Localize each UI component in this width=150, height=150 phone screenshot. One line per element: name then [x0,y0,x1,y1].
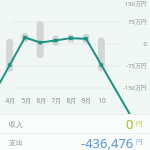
staticText: 9月 [81,96,92,105]
staticText: 円 [136,120,143,128]
staticText: 75万円 [128,18,147,26]
staticText: 0 [143,40,147,48]
staticText: 8月 [66,96,77,105]
button[interactable]: 支出 [0,134,150,150]
staticText: 150万円 [124,0,147,8]
staticText: -436,476 [81,134,134,150]
staticText: 4月 [5,96,16,105]
staticText: 5月 [21,96,32,105]
staticText: 0 [126,115,134,133]
button[interactable]: Monthly balance chart [0,0,150,92]
staticText: 支出 [9,138,23,147]
staticText: 10 [98,96,106,105]
staticText: 収入 [9,120,23,129]
staticText: 7月 [51,96,62,105]
staticText: -75万円 [126,62,147,70]
staticText: 6月 [36,96,47,105]
staticText: -150万円 [122,84,147,92]
button[interactable]: 収入 [0,115,150,133]
staticText: 円 [136,138,143,146]
